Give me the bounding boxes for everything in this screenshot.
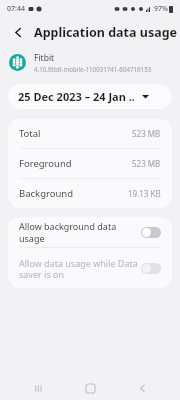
staticText: Application data usage [34,24,178,41]
button[interactable]: Toggle [141,263,161,274]
button[interactable]: Foreground [8,149,172,178]
button[interactable]: Allow data usage while Data saver is on [8,248,172,288]
staticText: 97% [154,4,168,14]
button[interactable]: Recent apps [26,376,52,400]
staticText: Foreground [19,157,72,170]
staticText: Allow data usage while Data saver is on [19,257,141,280]
button[interactable]: 25 Dec 2023 – 24 Jan .. [8,84,172,109]
button[interactable]: Allow background data usage [8,217,172,247]
staticText: 523 MB [132,158,161,169]
button[interactable]: Home [77,376,103,400]
staticText: Background [19,187,74,200]
staticText: 19.13 KB [128,188,161,199]
button[interactable]: Background [8,179,172,208]
button[interactable]: Toggle [141,227,161,238]
staticText: Total [19,127,41,140]
button[interactable]: Back [129,376,155,400]
button[interactable]: Back [8,22,28,42]
staticText: Fitbit [34,52,55,64]
staticText: 523 MB [132,128,161,139]
button[interactable]: Total [8,119,172,148]
staticText: 4.10.fitbit-mobile-110031741-604716153 [34,65,152,73]
staticText: 07:44 [7,4,25,14]
staticText: Allow background data usage [19,220,141,244]
staticText: 25 Dec 2023 – 24 Jan .. [18,89,135,104]
